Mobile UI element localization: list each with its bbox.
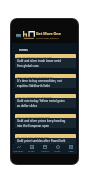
staticText: Gold & Silver Jewellery	[36, 37, 59, 40]
staticText: Live Rates	[13, 150, 24, 153]
staticText: news	[19, 47, 28, 52]
button[interactable]: Menu	[16, 32, 21, 38]
staticText: Gold price tumbles after Powell talk	[17, 139, 66, 143]
staticText: Graph	[28, 150, 35, 153]
button[interactable]: Sun, 01 Aug 2021 07:10:00 GMT	[15, 94, 76, 108]
button[interactable]: Sat, 31 Jul 2021 04:30:00 GMT	[15, 114, 76, 128]
staticText: It's time to buy commodities, not	[17, 79, 62, 83]
button[interactable]: Wheel	[51, 144, 64, 154]
staticText: Gold rate today: Yellow metal gains	[17, 99, 65, 103]
staticText: Get More One Jewellers	[36, 31, 76, 36]
button[interactable]: Graph	[25, 144, 38, 154]
staticText: Mon, 02 Aug 2021 05:50:00 GMT	[17, 75, 54, 78]
staticText: into the European open	[17, 124, 50, 128]
button[interactable]: Fri, 30 Jul 2021 09:05:00 GMT	[15, 134, 76, 144]
staticText: Wheel	[54, 150, 61, 153]
staticText: firm global cues	[17, 64, 39, 68]
staticText: Gold and silver prices keep heading	[17, 119, 66, 123]
staticText: News	[68, 150, 74, 153]
button[interactable]: Mon, 02 Aug 2021 05:50:00 GMT	[15, 74, 76, 88]
button[interactable]: News	[64, 144, 77, 154]
staticText: Sun, 01 Aug 2021 07:10:00 GMT	[17, 95, 53, 98]
staticText: Fri, 30 Jul 2021 09:05:00 GMT	[17, 135, 50, 138]
staticText: Gold and silver trade lower amid	[17, 59, 62, 63]
staticText: equities: Siddharth Sethi	[17, 84, 51, 88]
staticText: Trading	[41, 150, 49, 153]
staticText: Sat, 31 Jul 2021 04:30:00 GMT	[17, 115, 50, 118]
button[interactable]: Trading	[38, 144, 51, 154]
staticText: as dollar slides	[17, 104, 38, 108]
button[interactable]: Tue, 03 Aug 2021 06:21:00 GMT	[15, 54, 76, 68]
button[interactable]: Live Rates	[12, 144, 25, 154]
staticText: Tue, 03 Aug 2021 06:21:00 GMT	[17, 55, 53, 58]
